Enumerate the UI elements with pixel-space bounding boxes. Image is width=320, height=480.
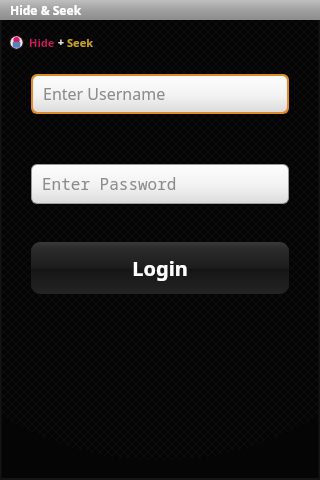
staticText: Hide [29, 35, 55, 50]
staticText: + [58, 35, 64, 49]
staticText: Seek [67, 35, 94, 50]
other: Hide and Seek logo [9, 35, 24, 50]
staticText: Enter Username [43, 83, 166, 105]
button[interactable]: Enter Password [32, 165, 288, 203]
staticText: Enter Password [42, 173, 177, 195]
staticText: Login [132, 255, 188, 282]
staticText: Hide & Seek [10, 2, 82, 18]
button[interactable]: Enter Username [33, 76, 287, 112]
button[interactable]: Login [31, 242, 289, 294]
